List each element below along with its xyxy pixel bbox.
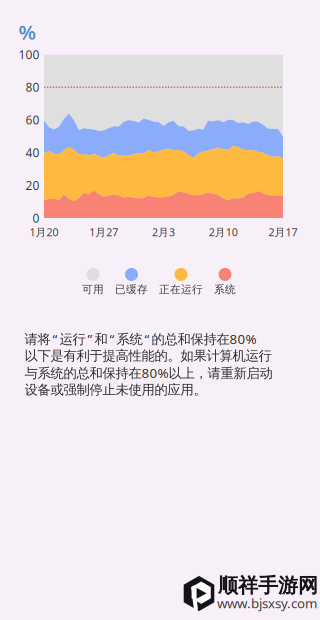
staticText: % <box>18 19 36 45</box>
staticText: 系统 <box>214 283 236 296</box>
staticText: 顺祥手游网 <box>218 573 318 598</box>
staticText: 80 <box>25 79 39 95</box>
staticText: www.bjsxsy.com <box>217 594 317 612</box>
staticText: 0 <box>32 210 39 226</box>
staticText: 20 <box>25 177 39 193</box>
staticText: 正在运行 <box>159 283 203 296</box>
staticText: 2月3 <box>152 225 175 239</box>
staticText: 40 <box>25 145 39 160</box>
staticText: 已缓存 <box>115 283 148 296</box>
staticText: 1月20 <box>29 225 58 239</box>
staticText: 1月27 <box>89 225 118 239</box>
staticText: 请将 “ 运行 ” 和 “ 系统 “ 的总和保持在80% 以下是有利于提高性能的… <box>24 330 272 398</box>
staticText: 2月17 <box>268 225 297 239</box>
staticText: 2月10 <box>209 225 238 239</box>
staticText: 60 <box>25 112 39 128</box>
staticText: 可用 <box>82 283 104 296</box>
staticText: 100 <box>18 46 39 62</box>
